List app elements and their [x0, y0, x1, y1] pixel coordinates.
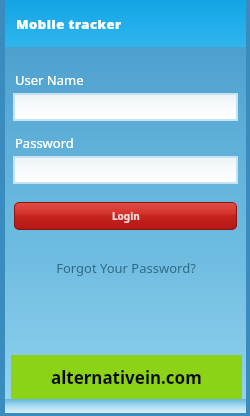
button[interactable]: Forgot Your Password? [5, 259, 246, 277]
staticText: alternativein.com [51, 366, 202, 389]
button[interactable]: Login [14, 202, 237, 230]
staticText: Password [15, 134, 74, 152]
staticText: Login [112, 209, 140, 223]
button[interactable]: alternativein.com [11, 355, 242, 399]
button[interactable] [15, 158, 236, 182]
button[interactable] [15, 95, 236, 119]
staticText: Mobile tracker [16, 15, 122, 33]
staticText: User Name [15, 71, 84, 89]
staticText: Forgot Your Password? [56, 259, 196, 277]
